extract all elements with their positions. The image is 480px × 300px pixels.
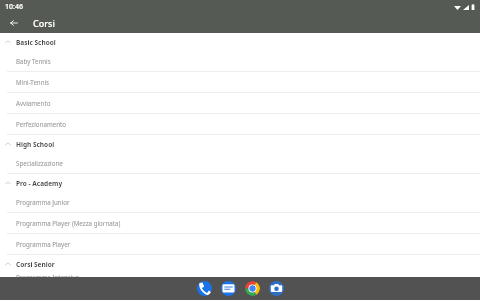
button[interactable]: Chrome	[245, 281, 260, 296]
button[interactable]: Programma Player	[0, 234, 480, 255]
button[interactable]: Basic School	[0, 33, 480, 51]
button[interactable]: Programma Player (Mezza giornata)	[0, 213, 480, 234]
staticText: High School	[16, 140, 55, 149]
button[interactable]: Corsi Senior	[0, 255, 480, 273]
button[interactable]: Programma Intensivo	[0, 273, 480, 277]
button[interactable]: Mini-Tennis	[0, 72, 480, 93]
staticText: Corsi	[33, 17, 55, 29]
staticText: Programma Intensivo	[16, 273, 80, 277]
button[interactable]: Perfezionamento	[0, 114, 480, 135]
button[interactable]: Specializzazione	[0, 153, 480, 174]
button[interactable]: Camera	[269, 281, 284, 296]
staticText: Avviamento	[16, 99, 51, 107]
button[interactable]: Phone	[197, 281, 212, 296]
button[interactable]: Back	[7, 16, 21, 30]
staticText: 10:46	[5, 2, 23, 12]
button[interactable]: Avviamento	[0, 93, 480, 114]
staticText: Programma Player	[16, 240, 71, 248]
button[interactable]: Pro - Academy	[0, 174, 480, 192]
staticText: Specializzazione	[16, 159, 63, 167]
staticText: Perfezionamento	[16, 120, 66, 128]
button[interactable]: Programma Junior	[0, 192, 480, 213]
button[interactable]: Baby Tennis	[0, 51, 480, 72]
staticText: Programma Junior	[16, 198, 70, 206]
staticText: Programma Player (Mezza giornata)	[16, 219, 121, 227]
staticText: Mini-Tennis	[16, 78, 50, 86]
button[interactable]: High School	[0, 135, 480, 153]
staticText: Pro - Academy	[16, 179, 63, 188]
staticText: Baby Tennis	[16, 57, 51, 65]
button[interactable]: Messages	[221, 281, 236, 296]
staticText: Corsi Senior	[16, 260, 55, 269]
staticText: Basic School	[16, 38, 56, 47]
